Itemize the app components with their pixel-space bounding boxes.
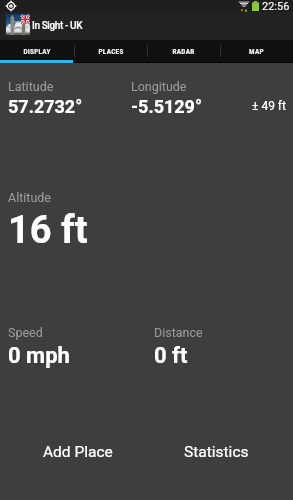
button[interactable]: Add Place <box>9 404 146 500</box>
staticText: 0 mph <box>8 343 70 369</box>
staticText: Statistics <box>184 443 249 461</box>
button[interactable]: Statistics <box>146 404 287 500</box>
staticText: In Sight - UK <box>32 20 83 32</box>
staticText: MAP <box>249 47 264 55</box>
button[interactable]: RADAR <box>147 40 220 62</box>
staticText: 57.2732° <box>8 96 83 117</box>
other: GPS active <box>5 0 17 12</box>
staticText: 0 ft <box>154 343 188 369</box>
staticText: -5.5129° <box>131 96 202 117</box>
staticText: RADAR <box>172 47 195 55</box>
staticText: Add Place <box>43 443 113 461</box>
button[interactable]: DISPLAY <box>0 40 74 62</box>
staticText: Latitude <box>8 79 54 94</box>
staticText: Longitude <box>131 79 187 94</box>
staticText: 16 ft <box>8 208 88 253</box>
button[interactable]: In Sight - UK <box>0 12 293 40</box>
staticText: PLACES <box>98 47 124 55</box>
staticText: Altitude <box>8 190 51 205</box>
staticText: DISPLAY <box>23 47 51 55</box>
button[interactable]: PLACES <box>74 40 147 62</box>
staticText: Distance <box>154 325 203 340</box>
staticText: Speed <box>8 325 43 340</box>
staticText: 22:56 <box>262 0 290 12</box>
staticText: ± 49 ft <box>252 99 286 113</box>
button[interactable]: MAP <box>220 40 293 62</box>
